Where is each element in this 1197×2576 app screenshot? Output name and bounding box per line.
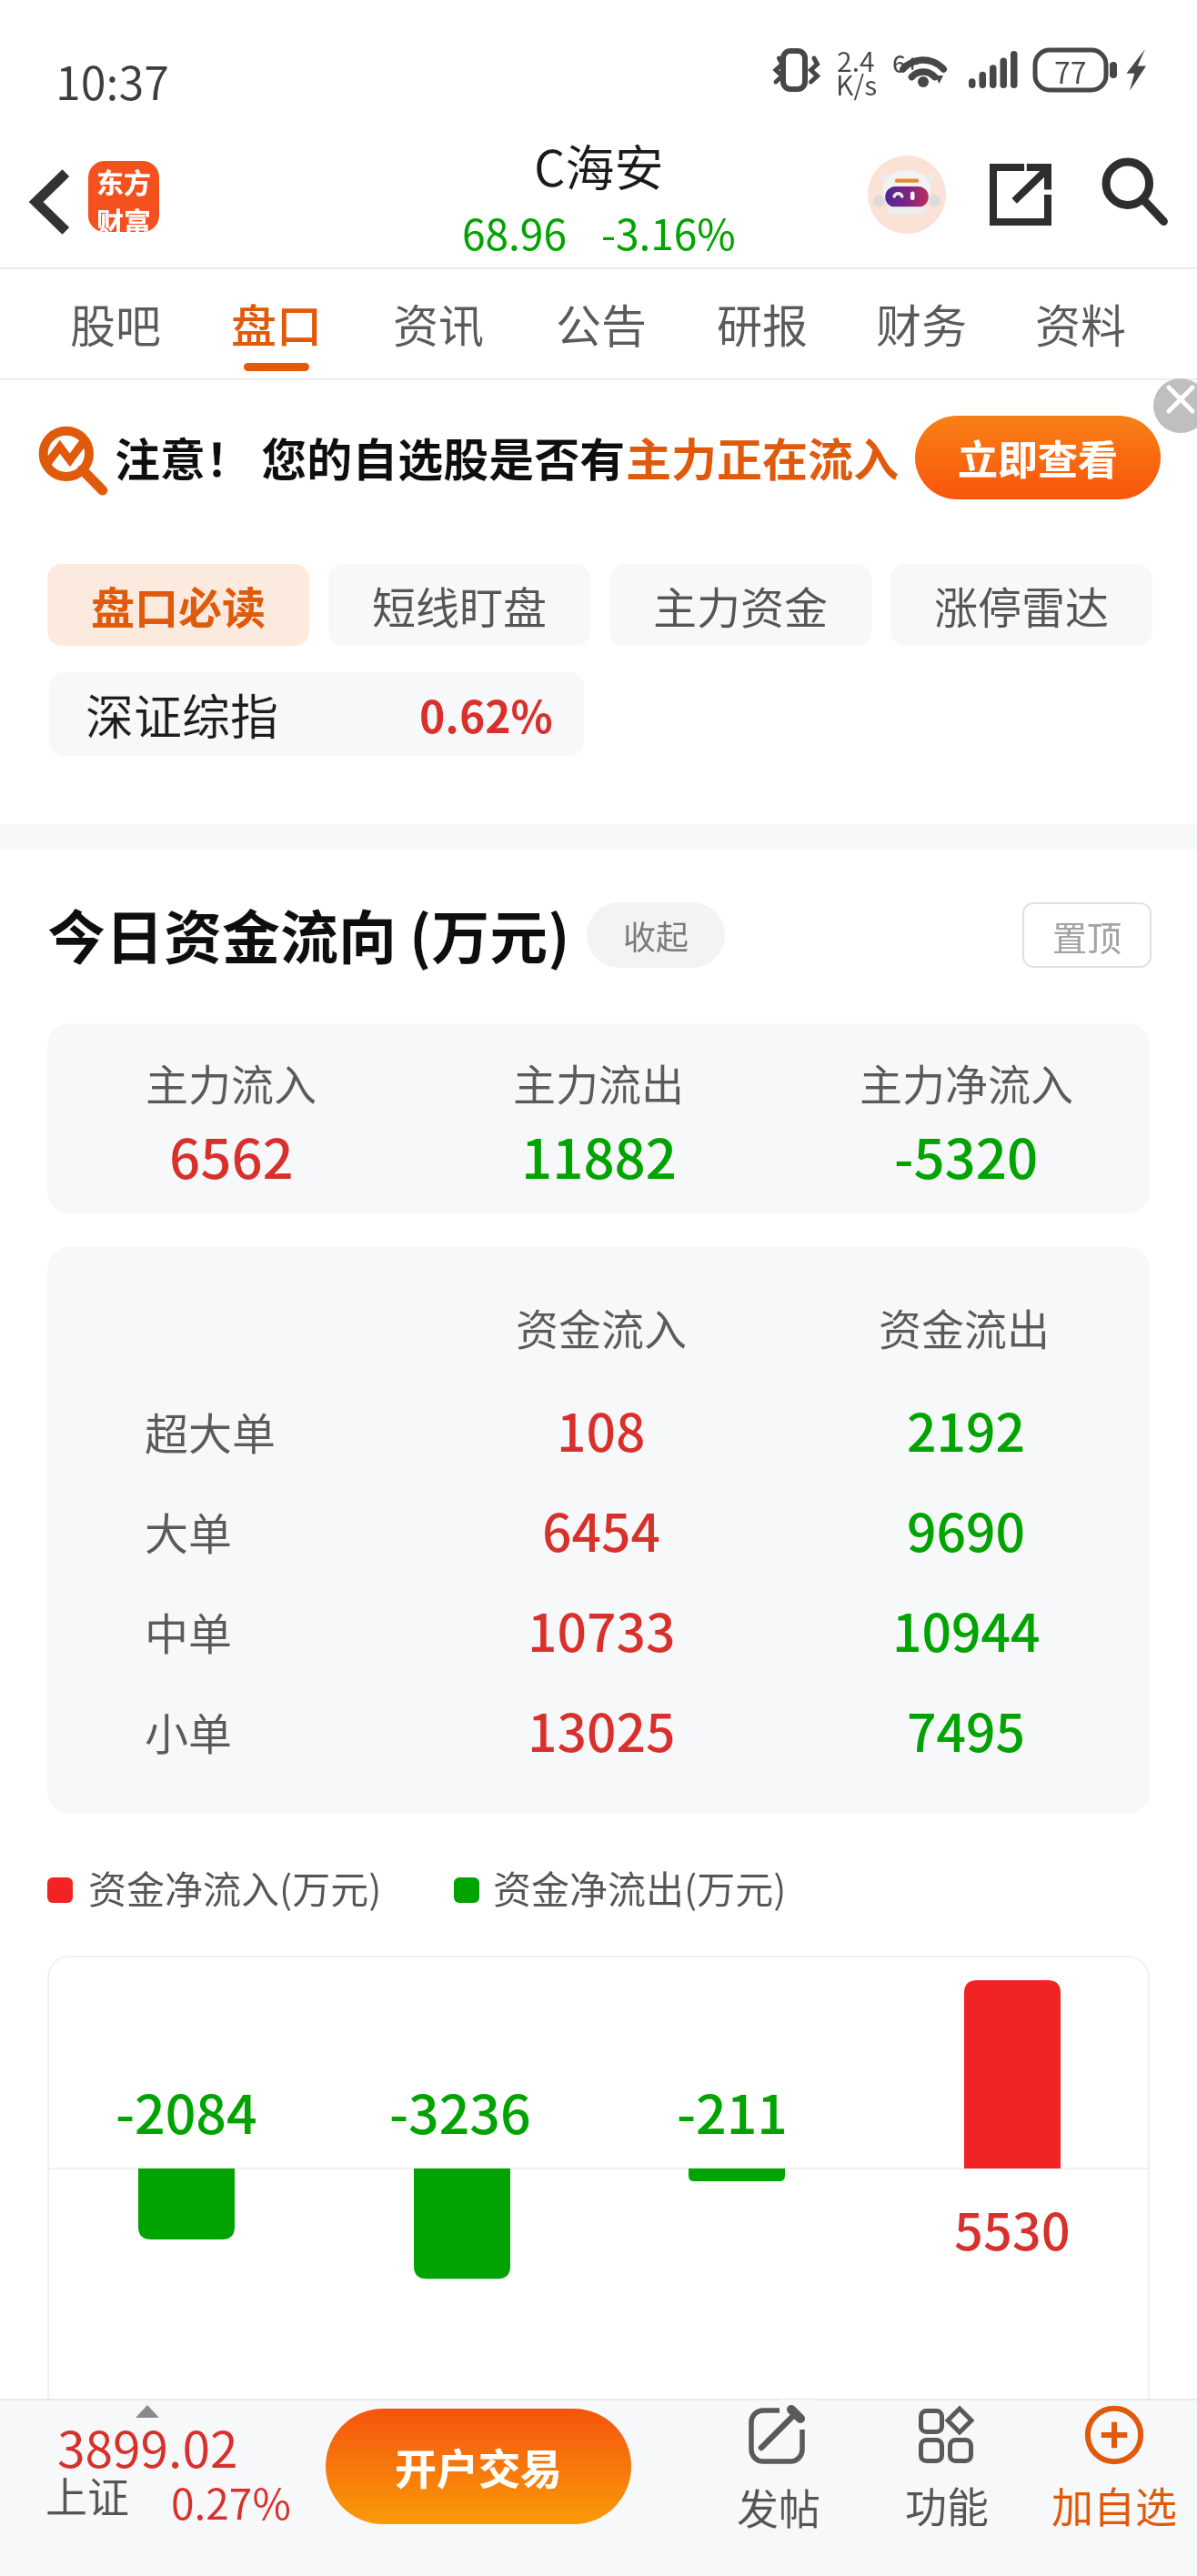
staticText: 资金净流出(万元) (493, 1859, 787, 1915)
staticText: 深证综指 (85, 679, 278, 750)
button[interactable]: 主力流入 (47, 1023, 415, 1213)
staticText: 主力净流入 (860, 1051, 1073, 1112)
button[interactable]: Close (1153, 378, 1197, 433)
staticText: 0.62% (419, 682, 553, 746)
button[interactable]: 资讯 (375, 269, 502, 378)
staticText: 涨停雷达 (934, 573, 1110, 637)
staticText: 68.96 (462, 202, 567, 263)
staticText: 10733 (528, 1592, 676, 1667)
staticText: 功能 (905, 2474, 989, 2535)
staticText: 7495 (907, 1692, 1025, 1767)
staticText: 大单 (145, 1499, 233, 1563)
staticText: 上证 (45, 2464, 129, 2525)
staticText: 发帖 (737, 2476, 820, 2537)
staticText: 3899.02 (57, 2410, 238, 2482)
button[interactable]: 股吧 (52, 269, 179, 378)
button[interactable]: 盘口必读 (47, 564, 309, 646)
staticText: -3236 (389, 2072, 531, 2149)
staticText: 主力流出 (513, 1051, 684, 1112)
staticText: -2084 (116, 2072, 257, 2149)
staticText: -5320 (894, 1115, 1039, 1194)
button[interactable]: 公告 (538, 269, 665, 378)
button[interactable]: East Money logo (88, 161, 159, 232)
staticText: 中单 (145, 1599, 233, 1663)
staticText: 立即查看 (958, 428, 1118, 487)
staticText: 2.4 (837, 40, 875, 79)
button[interactable]: Share (981, 155, 1061, 235)
staticText: 东方 (96, 161, 151, 200)
staticText: C海安 (534, 129, 664, 200)
staticText: 小单 (145, 1699, 233, 1763)
staticText: 9690 (907, 1492, 1025, 1567)
staticText: K/s (836, 64, 878, 103)
staticText: 10944 (892, 1592, 1041, 1667)
staticText: 今日资金流向 (47, 891, 397, 976)
staticText: 6454 (542, 1492, 660, 1567)
button[interactable]: Search (1094, 152, 1174, 232)
staticText: 置顶 (1052, 911, 1122, 961)
staticText: 资料 (1035, 290, 1126, 356)
staticText: 6562 (169, 1115, 294, 1194)
button[interactable]: 开户交易 (326, 2409, 631, 2524)
button[interactable]: 加自选 (1032, 2401, 1196, 2538)
staticText: 资讯 (393, 290, 484, 356)
button[interactable]: 主力净流入 (782, 1023, 1150, 1213)
staticText: 资金流入 (516, 1295, 687, 1357)
button[interactable]: 主力流出 (415, 1023, 782, 1213)
button[interactable]: 短线盯盘 (328, 564, 590, 646)
button[interactable]: 深证综指 (49, 672, 584, 756)
button[interactable]: 涨停雷达 (890, 564, 1152, 646)
staticText: 超大单 (145, 1399, 277, 1463)
staticText: 13025 (528, 1692, 676, 1767)
button[interactable]: 立即查看 (915, 416, 1161, 499)
staticText: 盘口必读 (91, 573, 267, 637)
button[interactable]: 财务 (858, 269, 985, 378)
staticText: (万元) (409, 891, 570, 976)
staticText: 盘口 (231, 290, 322, 356)
staticText: 6+ (892, 45, 920, 80)
staticText: 主力流入 (146, 1051, 317, 1112)
staticText: 股吧 (70, 290, 161, 356)
staticText: 主力正在流入 (626, 424, 899, 489)
staticText: 11882 (521, 1115, 677, 1194)
button[interactable]: Back (16, 166, 82, 238)
button[interactable]: AI assistant (868, 156, 946, 234)
staticText: 收起 (623, 911, 689, 959)
staticText: 短线盯盘 (372, 573, 548, 637)
staticText: 5530 (954, 2191, 1071, 2265)
button[interactable]: 研报 (699, 269, 826, 378)
button[interactable]: 功能 (865, 2401, 1029, 2538)
staticText: 10:37 (55, 47, 169, 113)
button[interactable]: 置顶 (1022, 902, 1152, 968)
button[interactable]: 主力资金 (609, 564, 871, 646)
staticText: 财富 (96, 200, 151, 232)
button[interactable] (36, 2410, 300, 2538)
staticText: -211 (677, 2072, 788, 2149)
staticText: 资金净流入(万元) (88, 1859, 382, 1915)
button[interactable]: 收起 (587, 902, 725, 968)
staticText: 公告 (556, 290, 647, 356)
staticText: 开户交易 (395, 2436, 562, 2497)
staticText: 加自选 (1051, 2474, 1177, 2535)
button[interactable]: 资料 (1017, 269, 1144, 378)
button[interactable]: 盘口 (213, 269, 340, 378)
staticText: -3.16% (601, 202, 736, 263)
staticText: 资金流出 (879, 1295, 1050, 1357)
staticText: 主力资金 (653, 573, 829, 637)
staticText: 财务 (876, 290, 967, 356)
staticText: 77 (1054, 50, 1087, 90)
staticText: 0.27% (171, 2471, 291, 2532)
staticText: 注意！ 您的自选股是否有 (115, 424, 626, 489)
staticText: 2192 (907, 1392, 1025, 1467)
staticText: 108 (557, 1392, 646, 1467)
staticText: 研报 (717, 290, 808, 356)
button[interactable]: 发帖 (697, 2401, 860, 2538)
